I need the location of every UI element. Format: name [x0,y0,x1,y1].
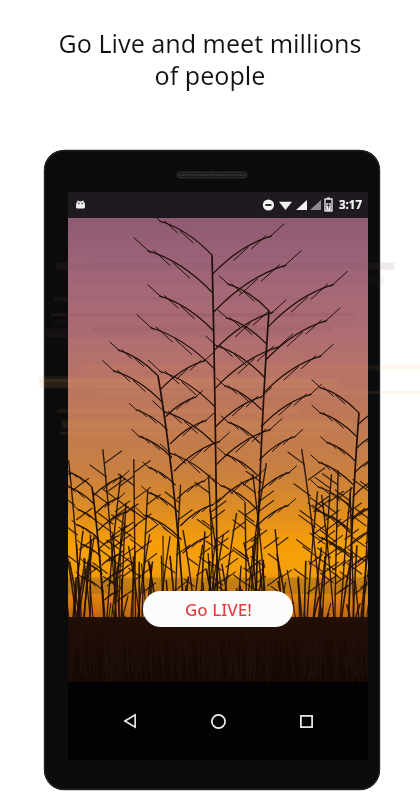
button[interactable]: Back [104,695,156,747]
button[interactable]: Recent apps [280,695,332,747]
staticText: 3:17 [339,197,362,213]
button[interactable]: Go LIVE! [143,591,293,627]
staticText: Go LIVE! [185,598,252,621]
button[interactable]: Home [192,695,244,747]
staticText: Go Live and meet millions of people [10,26,410,92]
